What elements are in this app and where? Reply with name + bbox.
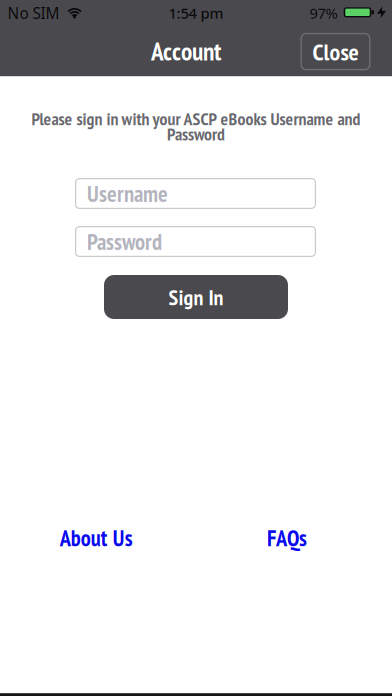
staticText: 97% bbox=[309, 3, 337, 23]
staticText: Close bbox=[312, 36, 358, 67]
staticText: Password bbox=[167, 122, 225, 145]
staticText: Password bbox=[87, 227, 162, 256]
button[interactable]: FAQs bbox=[267, 523, 307, 552]
button[interactable]: About Us bbox=[60, 523, 133, 552]
button[interactable]: Password bbox=[75, 226, 316, 257]
staticText: No SIM bbox=[7, 3, 59, 23]
button[interactable]: Sign In bbox=[104, 275, 288, 319]
button[interactable]: Close bbox=[300, 33, 370, 70]
staticText: FAQs bbox=[267, 523, 307, 552]
staticText: Account bbox=[151, 35, 221, 67]
staticText: Username bbox=[87, 179, 168, 208]
staticText: 1:54 pm bbox=[168, 3, 223, 23]
staticText: About Us bbox=[60, 523, 133, 552]
staticText: Sign In bbox=[168, 283, 223, 311]
staticText: Please sign in with your ASCP eBooks Use… bbox=[31, 107, 360, 130]
button[interactable]: Username bbox=[75, 178, 316, 209]
